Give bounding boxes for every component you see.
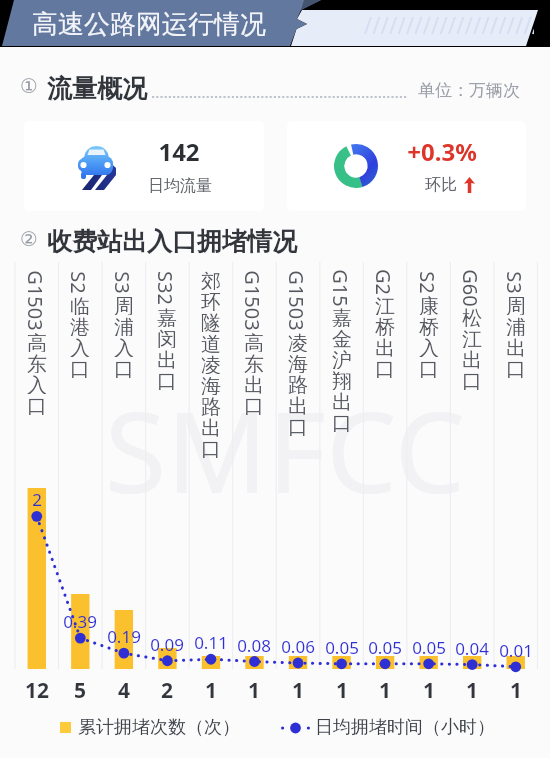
staticText: 0.39: [54, 610, 106, 633]
staticText: 出: [288, 394, 308, 415]
staticText: 路: [288, 373, 308, 394]
staticText: 12: [15, 676, 59, 705]
staticText: 松: [462, 306, 482, 327]
staticText: 口: [332, 411, 352, 432]
staticText: +0.3%: [382, 135, 502, 168]
staticText: 环比: [425, 175, 457, 195]
staticText: 海: [288, 352, 308, 373]
staticText: 翔: [332, 369, 352, 390]
staticText: 路: [201, 395, 221, 416]
staticText: 0.08: [228, 634, 280, 657]
staticText: 流量概况: [47, 73, 147, 104]
staticText: 口: [375, 357, 395, 378]
staticText: 江: [462, 327, 482, 348]
staticText: 嘉: [157, 306, 177, 327]
staticText: 口: [70, 357, 90, 378]
staticText: S2: [68, 271, 92, 294]
staticText: 142: [129, 135, 229, 168]
staticText: 出: [375, 336, 395, 357]
staticText: 浦: [114, 315, 134, 336]
staticText: 临: [70, 294, 90, 315]
staticText: 0.11: [185, 631, 237, 654]
staticText: 出: [462, 348, 482, 369]
staticText: 口: [201, 437, 221, 458]
staticText: 入: [114, 336, 134, 357]
staticText: S2: [417, 271, 441, 294]
staticText: G1503: [25, 270, 49, 331]
staticText: 高速公路网运行情况: [32, 8, 266, 41]
staticText: 浦: [506, 315, 526, 336]
staticText: 口: [419, 357, 439, 378]
staticText: 2: [145, 676, 189, 705]
button[interactable]: 累计拥堵次数（次）: [60, 716, 240, 739]
staticText: G1503: [286, 270, 310, 331]
staticText: 口: [157, 369, 177, 390]
staticText: 出: [506, 336, 526, 357]
staticText: 入: [70, 336, 90, 357]
staticText: 0.06: [272, 635, 324, 658]
staticText: 0.01: [490, 639, 542, 662]
staticText: 沪: [332, 348, 352, 369]
staticText: 4: [102, 676, 146, 705]
staticText: 江: [375, 294, 395, 315]
staticText: 闵: [157, 327, 177, 348]
staticText: 康: [419, 294, 439, 315]
staticText: 1: [494, 676, 538, 705]
staticText: 入: [27, 373, 47, 394]
staticText: 日均拥堵时间（小时）: [315, 716, 495, 739]
staticText: 高: [244, 331, 264, 352]
staticText: 1: [276, 676, 320, 705]
staticText: 1: [320, 676, 364, 705]
staticText: SMFCC: [38, 373, 532, 526]
staticText: 口: [506, 357, 526, 378]
button[interactable]: 142: [24, 121, 264, 211]
staticText: 东: [244, 352, 264, 373]
staticText: 高: [27, 331, 47, 352]
staticText: S3: [504, 271, 528, 294]
staticText: 凌: [288, 331, 308, 352]
staticText: 口: [27, 394, 47, 415]
staticText: 0.05: [359, 636, 411, 659]
staticText: 口: [462, 369, 482, 390]
staticText: 累计拥堵次数（次）: [78, 716, 240, 739]
button[interactable]: 日均拥堵时间（小时）: [281, 716, 495, 739]
staticText: 1: [450, 676, 494, 705]
staticText: 口: [114, 357, 134, 378]
staticText: 出: [157, 348, 177, 369]
staticText: 0.05: [316, 636, 368, 659]
staticText: G1503: [242, 270, 266, 331]
button[interactable]: +0.3%: [287, 121, 526, 211]
staticText: G60: [460, 269, 484, 307]
staticText: 日均流量: [130, 176, 230, 196]
staticText: 隧: [201, 311, 221, 332]
staticText: 1: [189, 676, 233, 705]
staticText: 入: [419, 336, 439, 357]
staticText: 0.04: [446, 637, 498, 660]
staticText: 口: [288, 415, 308, 436]
staticText: 出: [332, 390, 352, 411]
staticText: 0.19: [98, 625, 150, 648]
staticText: 周: [114, 294, 134, 315]
staticText: 桥: [375, 315, 395, 336]
staticText: 港: [70, 315, 90, 336]
staticText: 海: [201, 374, 221, 395]
staticText: 郊: [201, 269, 221, 290]
staticText: 单位：万辆次: [418, 80, 520, 101]
staticText: 东: [27, 352, 47, 373]
staticText: 5: [58, 676, 102, 705]
staticText: 1: [232, 676, 276, 705]
staticText: ②: [20, 227, 38, 250]
staticText: ①: [20, 74, 38, 97]
staticText: 周: [506, 294, 526, 315]
staticText: 口: [244, 394, 264, 415]
staticText: S3: [112, 271, 136, 294]
staticText: 0.09: [141, 633, 193, 656]
staticText: 2: [11, 488, 63, 511]
staticText: 收费站出入口拥堵情况: [47, 226, 297, 257]
staticText: G15: [330, 269, 354, 307]
staticText: 出: [201, 416, 221, 437]
staticText: 凌: [201, 353, 221, 374]
staticText: 道: [201, 332, 221, 353]
staticText: 出: [244, 373, 264, 394]
staticText: 嘉: [332, 306, 352, 327]
